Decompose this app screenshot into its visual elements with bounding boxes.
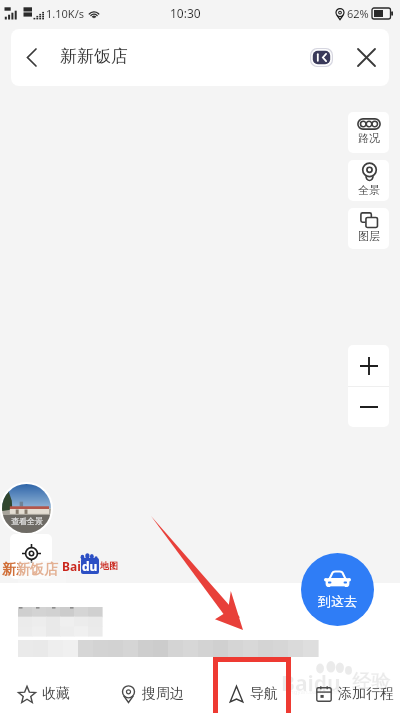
button[interactable]: 语音助手 (299, 29, 343, 86)
staticText: 新新饭店 (60, 46, 128, 67)
staticText: 查看全景 (11, 516, 43, 526)
staticText: du (82, 558, 98, 574)
staticText: Bai (62, 558, 81, 574)
button[interactable]: 到这去 (301, 553, 374, 626)
staticText: 1.10K/s (46, 6, 84, 21)
staticText: jingyan.baidu.com (287, 688, 339, 696)
button[interactable]: 收藏 (10, 675, 78, 713)
button[interactable]: 查看全景 (0, 482, 53, 535)
button[interactable]: 缩小 (348, 387, 389, 427)
staticText: 到这去 (318, 593, 357, 609)
staticText: 图层 (358, 229, 380, 243)
staticText: 收藏 (42, 685, 70, 703)
button[interactable]: 定位 (10, 534, 52, 579)
staticText: 导航 (250, 685, 278, 703)
button[interactable]: 图层 (348, 208, 389, 249)
staticText: Baidu (281, 669, 341, 698)
staticText: 全景 (358, 183, 380, 197)
button[interactable]: 导航 (222, 675, 284, 713)
staticText: 新新饭店 (2, 561, 58, 579)
button[interactable]: 路况 (348, 112, 389, 153)
button[interactable]: 关闭 (343, 29, 389, 86)
staticText: 路况 (358, 131, 380, 145)
staticText: 62% (347, 6, 369, 21)
staticText: 地图 (100, 560, 118, 571)
button[interactable]: 放大 (348, 345, 389, 386)
staticText: 添加行程 (338, 685, 394, 703)
staticText: 经验 (352, 670, 390, 694)
staticText: 搜周边 (142, 685, 184, 703)
button[interactable]: 添加行程 (309, 675, 400, 713)
staticText: 10:30 (170, 5, 201, 21)
button[interactable]: 搜周边 (112, 675, 192, 713)
button[interactable]: 全景 (348, 160, 389, 201)
button[interactable]: 返回 (11, 29, 51, 86)
